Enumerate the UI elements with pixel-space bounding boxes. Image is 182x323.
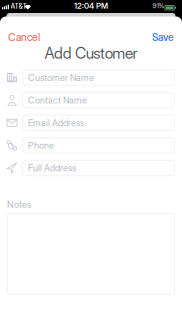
staticText: 12:04 PM bbox=[74, 1, 108, 10]
staticText: Add Customer bbox=[44, 44, 138, 62]
button[interactable]: Email Address bbox=[22, 115, 175, 131]
staticText: Contact Name bbox=[28, 95, 87, 106]
staticText: Phone bbox=[28, 140, 54, 151]
button[interactable]: Save bbox=[152, 31, 174, 43]
staticText: Email Address bbox=[28, 117, 84, 128]
staticText: Notes bbox=[7, 199, 31, 210]
button[interactable]: Customer Name bbox=[22, 69, 175, 86]
staticText: Save bbox=[152, 31, 174, 43]
button[interactable]: Full Address bbox=[22, 160, 175, 176]
staticText: 91% bbox=[152, 2, 164, 10]
button[interactable]: Contact Name bbox=[22, 92, 175, 108]
button[interactable]: Phone bbox=[22, 137, 175, 154]
staticText: AT&T bbox=[10, 2, 26, 10]
staticText: Full Address bbox=[28, 163, 76, 173]
staticText: Customer Name bbox=[28, 72, 94, 83]
button[interactable]: Cancel bbox=[8, 31, 40, 43]
staticText: Cancel bbox=[8, 31, 40, 43]
